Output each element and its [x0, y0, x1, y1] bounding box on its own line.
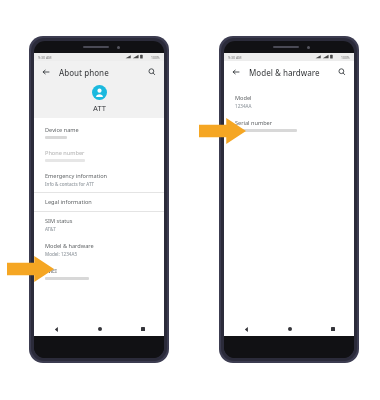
staticText: Serial number [235, 119, 273, 127]
button[interactable]: Back [224, 322, 268, 336]
button[interactable]: Serial number [224, 114, 354, 137]
button[interactable]: Back [39, 65, 53, 79]
button[interactable]: Recents [121, 322, 164, 336]
staticText: Device name [45, 126, 79, 134]
button[interactable]: Home [78, 322, 121, 336]
staticText: Phone number [45, 149, 85, 157]
staticText: Model & hardware [249, 67, 320, 78]
button[interactable]: Search [335, 65, 349, 79]
staticText: ATT [93, 103, 106, 113]
staticText: 9:30 AM [38, 55, 52, 60]
button[interactable]: Device name [34, 121, 164, 144]
staticText: 1234AA [235, 103, 252, 109]
staticText: Model [235, 94, 252, 102]
staticText: 100% [151, 55, 160, 60]
staticText: AT&T [45, 226, 56, 232]
staticText: Model: 1234A5 [45, 251, 78, 257]
button[interactable]: Legal information [34, 193, 164, 211]
staticText: Info & contacts for ATT [45, 181, 95, 187]
button[interactable]: Search [145, 65, 159, 79]
button[interactable]: Account avatar [92, 85, 107, 100]
button[interactable]: Home [268, 322, 311, 336]
button[interactable]: Model & hardware [34, 237, 164, 262]
staticText: About phone [59, 67, 109, 78]
button[interactable]: Recents [311, 322, 354, 336]
staticText: IMEI [45, 267, 57, 275]
staticText: Legal information [45, 198, 92, 206]
button[interactable]: Back [34, 322, 78, 336]
button[interactable]: IMEI [34, 262, 164, 285]
staticText: 100% [341, 55, 350, 60]
staticText: Emergency information [45, 172, 107, 180]
staticText: 9:30 AM [228, 55, 242, 60]
staticText: SIM status [45, 217, 73, 225]
button[interactable]: Model [224, 89, 354, 114]
button[interactable]: Emergency information [34, 167, 164, 192]
button[interactable]: Back [229, 65, 243, 79]
staticText: Model & hardware [45, 242, 94, 250]
button[interactable]: Phone number [34, 144, 164, 167]
button[interactable]: SIM status [34, 212, 164, 237]
